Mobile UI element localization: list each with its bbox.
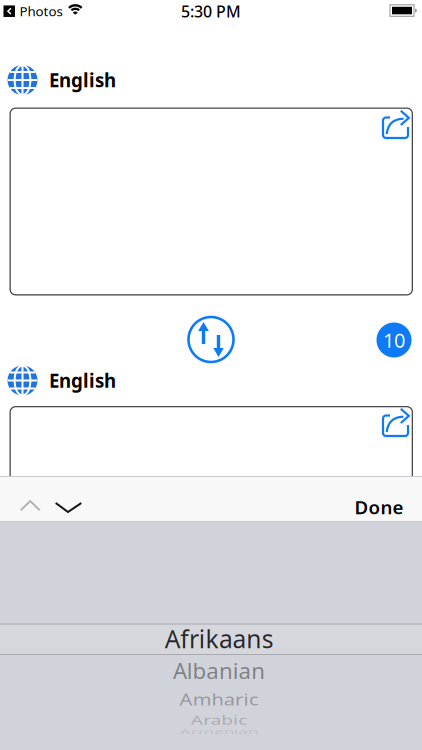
- staticText: Armenian: [173, 718, 264, 745]
- staticText: Arabic: [187, 705, 250, 734]
- staticText: Afrikaans: [163, 622, 275, 655]
- button[interactable]: Previous field: [20, 500, 41, 512]
- staticText: 10: [383, 327, 405, 353]
- button[interactable]: Swap languages: [186, 314, 236, 364]
- staticText: Done: [354, 495, 403, 519]
- button[interactable]: English: [7, 63, 207, 97]
- staticText: English: [49, 68, 116, 92]
- button[interactable]: Amharic: [177, 685, 261, 713]
- button[interactable]: Done: [354, 495, 403, 519]
- staticText: Photos: [19, 2, 62, 20]
- button[interactable]: Albanian: [172, 656, 266, 686]
- button[interactable]: Afrikaans: [163, 622, 275, 655]
- button[interactable]: Armenian: [173, 718, 264, 745]
- button[interactable]: Back to Photos: [3, 5, 15, 17]
- button[interactable]: English: [7, 363, 207, 397]
- button[interactable]: Arabic: [187, 705, 250, 734]
- staticText: Amharic: [177, 685, 261, 713]
- staticText: 5:30 PM: [181, 1, 241, 22]
- staticText: Albanian: [172, 656, 266, 686]
- button[interactable]: Share translation: [379, 407, 409, 437]
- button[interactable]: 10 translations remaining: [376, 322, 411, 357]
- button[interactable]: Next field: [55, 502, 82, 513]
- staticText: English: [49, 368, 116, 393]
- button[interactable]: Share translation: [379, 109, 409, 139]
